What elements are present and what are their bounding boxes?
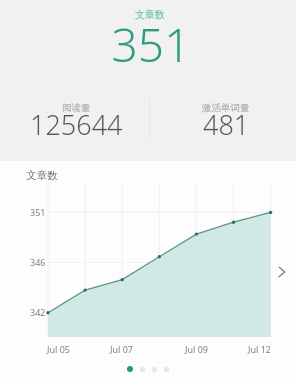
staticText: 125644 (30, 106, 123, 143)
staticText: 346 (30, 256, 46, 268)
staticText: Jul 09 (185, 343, 208, 355)
button[interactable]: Page 4 (164, 367, 169, 372)
button[interactable]: 阅读量 (3, 96, 149, 142)
staticText: Jul 12 (248, 343, 271, 355)
staticText: 351 (30, 206, 46, 218)
button[interactable]: Page 1 (127, 366, 133, 372)
button[interactable]: Page 3 (152, 367, 157, 372)
staticText: 文章数 (26, 169, 58, 182)
button[interactable]: 激活单词量 (153, 96, 296, 142)
staticText: 342 (30, 306, 46, 318)
button[interactable]: 文章数 (0, 161, 296, 379)
staticText: 阅读量 (62, 102, 91, 114)
staticText: 文章数 (2, 8, 296, 21)
staticText: Jul 07 (110, 343, 133, 355)
button[interactable]: Next chart (268, 257, 294, 283)
staticText: 激活单词量 (202, 102, 250, 114)
staticText: 481 (203, 106, 250, 143)
staticText: Jul 05 (47, 343, 70, 355)
button[interactable]: Page 2 (140, 367, 145, 372)
staticText: 351 (3, 13, 296, 76)
